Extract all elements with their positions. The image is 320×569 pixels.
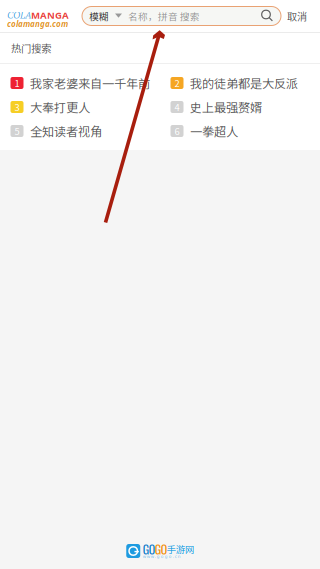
button[interactable]: 2	[160, 71, 320, 95]
button[interactable]: 1	[0, 71, 160, 95]
staticText: colamanga.com	[7, 19, 68, 29]
staticText: 手游网	[167, 542, 194, 556]
button[interactable]: 模糊	[82, 6, 281, 25]
staticText: 热门搜索	[11, 40, 51, 56]
staticText: 一拳超人	[190, 122, 238, 140]
staticText: MANGA	[31, 8, 69, 22]
staticText: 取消	[287, 9, 307, 23]
staticText: 3	[14, 100, 19, 114]
staticText: w w w . g o g o . c n	[143, 554, 181, 559]
staticText: 我的徒弟都是大反派	[190, 74, 298, 92]
staticText: 我家老婆来自一千年前	[30, 74, 150, 92]
button[interactable]: 5	[0, 119, 160, 143]
staticText: 史上最强赘婿	[190, 98, 262, 116]
staticText: 名称，拼音 搜索	[128, 9, 200, 23]
staticText: 2	[174, 76, 179, 90]
staticText: 5	[14, 124, 19, 138]
staticText: COLA	[7, 9, 31, 21]
staticText: 模糊	[89, 9, 109, 23]
button[interactable]: 4	[160, 95, 320, 119]
staticText: 6	[174, 124, 179, 138]
staticText: 全知读者视角	[30, 122, 102, 140]
staticText: 大奉打更人	[30, 98, 90, 116]
button[interactable]: 3	[0, 95, 160, 119]
button[interactable]: 取消	[281, 1, 313, 31]
staticText: GO	[143, 540, 155, 558]
staticText: GO	[155, 540, 167, 558]
button[interactable]: 6	[160, 119, 320, 143]
staticText: 1	[14, 76, 19, 90]
staticText: 4	[174, 100, 179, 114]
